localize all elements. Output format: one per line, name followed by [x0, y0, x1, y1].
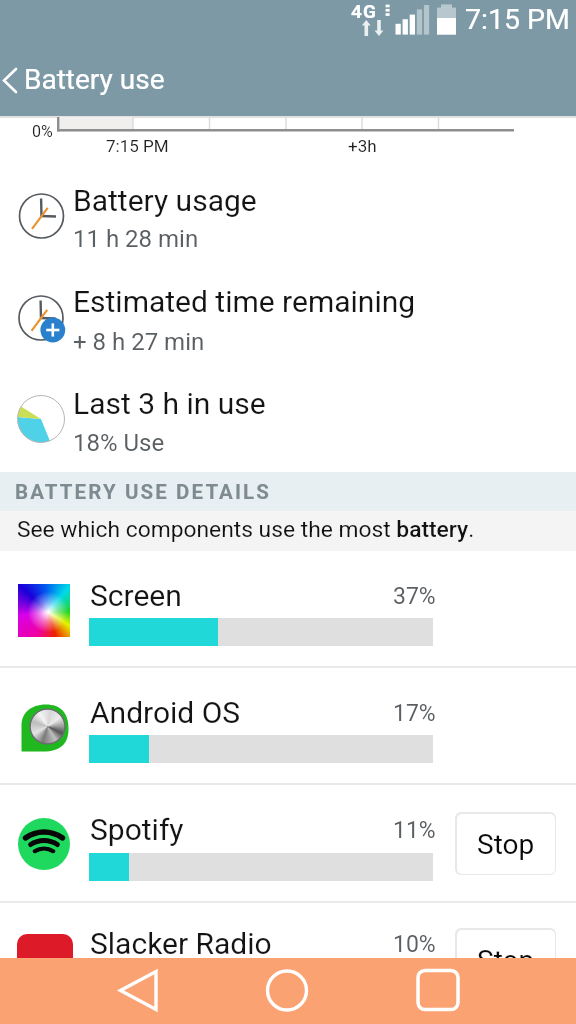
button[interactable]: Stop — [455, 928, 556, 991]
staticText: +3h — [348, 136, 377, 156]
staticText: 37% — [393, 583, 436, 610]
staticText: Stop — [477, 944, 535, 977]
button[interactable] — [0, 551, 576, 668]
button[interactable]: Stop — [0, 902, 576, 1019]
button[interactable] — [0, 369, 576, 470]
staticText: Battery usage — [73, 183, 257, 218]
staticText: 7:15 PM — [106, 136, 169, 156]
staticText: 11 h 28 min — [73, 225, 199, 253]
button[interactable]: Recents — [398, 958, 478, 1024]
staticText: 18% Use — [73, 429, 165, 457]
staticText: Last 3 h in use — [73, 386, 266, 421]
staticText: BATTERY USE DETAILS — [15, 480, 271, 504]
staticText: Stop — [477, 828, 535, 861]
staticText: Android OS — [90, 695, 241, 730]
button[interactable]: Back — [98, 958, 178, 1024]
button[interactable] — [0, 472, 576, 511]
button[interactable]: Stop — [455, 812, 556, 875]
staticText: 4G — [351, 0, 377, 22]
button[interactable] — [0, 668, 576, 785]
button[interactable] — [0, 267, 576, 368]
button[interactable]: Stop — [0, 786, 576, 903]
staticText: 7:15 PM — [465, 3, 570, 36]
staticText: See which components use the most batter… — [17, 516, 475, 543]
staticText: 0% — [32, 122, 53, 141]
button[interactable]: Home — [247, 958, 327, 1024]
staticText: + 8 h 27 min — [73, 328, 205, 356]
button[interactable] — [0, 42, 186, 116]
staticText: 10% — [393, 931, 436, 958]
staticText: Estimated time remaining — [73, 284, 416, 319]
staticText: Spotify — [90, 812, 184, 847]
staticText: Slacker Radio — [90, 926, 272, 961]
button[interactable] — [0, 166, 576, 267]
staticText: Screen — [90, 578, 182, 613]
staticText: Battery use — [24, 63, 165, 96]
staticText: 17% — [393, 700, 436, 727]
staticText: 11% — [393, 817, 436, 844]
